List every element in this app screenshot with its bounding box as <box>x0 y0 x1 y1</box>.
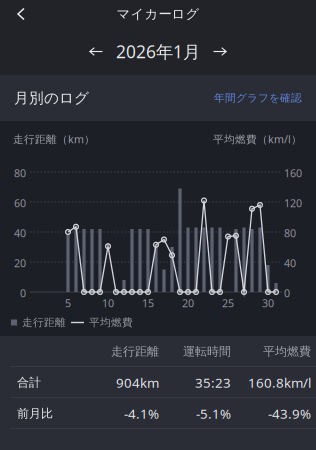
staticText: 60 <box>14 196 26 210</box>
staticText: 120 <box>284 196 302 210</box>
staticText: 2026年1月 <box>116 40 200 63</box>
staticText: 平均燃費 <box>263 344 311 359</box>
staticText: 20 <box>14 256 26 270</box>
staticText: 走行距離（km） <box>13 132 95 146</box>
button[interactable]: Next month <box>204 38 236 65</box>
staticText: 5 <box>65 296 71 310</box>
staticText: -43.9% <box>268 405 311 422</box>
staticText: 0 <box>284 286 290 300</box>
staticText: 160 <box>284 166 302 180</box>
staticText: 904km <box>116 374 159 391</box>
staticText: 平均燃費 <box>89 316 133 329</box>
button[interactable]: Back <box>0 0 36 27</box>
staticText: マイカーログ <box>116 6 199 22</box>
staticText: 10 <box>102 296 114 310</box>
staticText: 前月比 <box>17 406 53 421</box>
staticText: 160.8km/l <box>248 374 311 391</box>
staticText: 40 <box>14 226 26 240</box>
staticText: 平均燃費（km/l） <box>213 132 302 146</box>
staticText: 80 <box>284 226 296 240</box>
staticText: -4.1% <box>124 405 159 422</box>
button[interactable]: 年間グラフを確認 <box>214 91 302 104</box>
staticText: 年間グラフを確認 <box>214 91 302 104</box>
staticText: 月別のログ <box>14 89 89 107</box>
staticText: 20 <box>182 296 194 310</box>
staticText: 合計 <box>17 375 41 390</box>
staticText: 40 <box>284 256 296 270</box>
staticText: 80 <box>14 166 26 180</box>
staticText: 35:23 <box>195 374 231 391</box>
staticText: 15 <box>142 296 154 310</box>
staticText: 30 <box>262 296 274 310</box>
staticText: 走行距離 <box>22 316 66 329</box>
staticText: -5.1% <box>196 405 231 422</box>
staticText: 25 <box>222 296 234 310</box>
staticText: 走行距離 <box>111 344 159 359</box>
staticText: 運転時間 <box>183 344 231 359</box>
button[interactable]: Previous month <box>80 38 112 65</box>
staticText: 0 <box>20 286 26 300</box>
